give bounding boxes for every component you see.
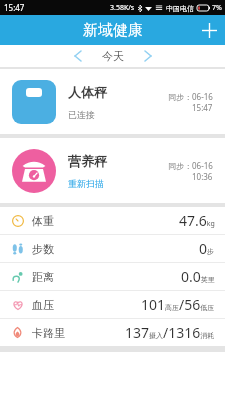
staticText: 步数: [32, 242, 54, 256]
staticText: 15:47: [4, 2, 25, 13]
staticText: 已连接: [68, 109, 95, 120]
staticText: 营养秤: [68, 153, 107, 169]
button[interactable]: 人体秤: [0, 69, 225, 134]
staticText: 15:47: [192, 102, 213, 113]
button[interactable]: 卡路里: [0, 319, 225, 346]
staticText: 血压: [32, 298, 54, 312]
staticText: 今天: [102, 49, 124, 63]
staticText: 同步：: [168, 161, 192, 171]
button[interactable]: 距离: [0, 263, 225, 290]
staticText: 重新扫描: [68, 178, 104, 189]
staticText: 0步: [199, 239, 215, 258]
staticText: 同步：: [168, 92, 192, 102]
staticText: 距离: [32, 270, 54, 284]
staticText: 体重: [32, 214, 54, 228]
staticText: 101高压/56低压: [141, 295, 215, 314]
staticText: 人体秤: [68, 84, 107, 100]
button[interactable]: Next day: [135, 45, 161, 67]
staticText: 47.6kg: [179, 211, 215, 230]
staticText: 0.0英里: [181, 267, 215, 286]
staticText: 新域健康: [83, 21, 143, 40]
staticText: 10:36: [192, 171, 213, 182]
button[interactable]: 营养秤: [0, 138, 225, 203]
button[interactable]: Previous day: [65, 45, 91, 67]
staticText: 3.58K/s: [110, 3, 135, 13]
button[interactable]: 今天: [91, 49, 135, 63]
staticText: 卡路里: [32, 326, 65, 340]
button[interactable]: 步数: [0, 235, 225, 262]
button[interactable]: 体重: [0, 207, 225, 234]
staticText: 中国电信: [166, 4, 194, 13]
button[interactable]: 血压: [0, 291, 225, 318]
staticText: 06-16: [192, 160, 213, 171]
staticText: 7%: [212, 3, 222, 13]
staticText: 137摄入/1316消耗: [125, 323, 215, 342]
staticText: 06-16: [192, 91, 213, 102]
button[interactable]: Add device: [193, 15, 225, 45]
